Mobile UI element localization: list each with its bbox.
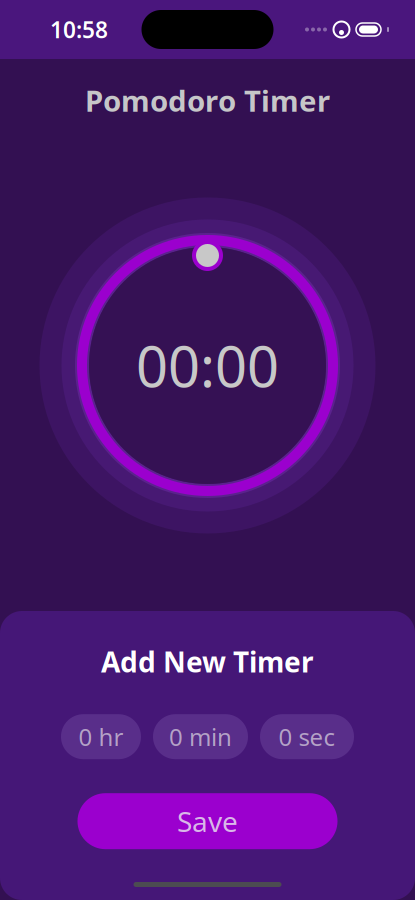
button[interactable]: 0 min [153,714,248,759]
staticText: 10:58 [50,14,108,44]
staticText: 0 sec [278,721,335,753]
button[interactable]: Save [77,793,337,849]
staticText: 0 min [169,721,232,753]
staticText: Add New Timer [101,643,314,680]
button[interactable]: 0 sec [260,714,354,759]
staticText: Pomodoro Timer [85,81,330,120]
staticText: 00:00 [136,328,279,403]
staticText: Save [177,803,238,840]
button[interactable]: 0 hr [61,714,141,759]
staticText: 0 hr [78,721,123,753]
